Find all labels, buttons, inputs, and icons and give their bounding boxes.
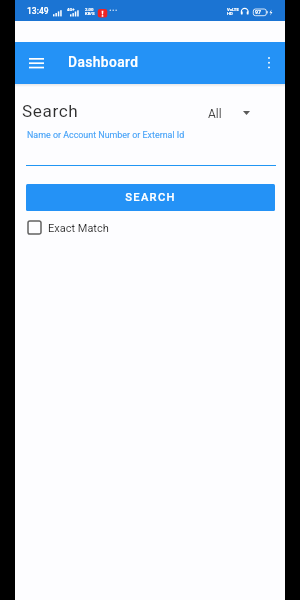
staticText: Exact Match [48,222,109,235]
staticText: 2.00 [85,7,94,12]
staticText: 97 [255,9,261,15]
staticText: Dashboard [68,54,139,70]
button[interactable]: SEARCH [26,184,275,211]
staticText: 13:49 [27,6,49,16]
staticText: HD [227,11,233,16]
staticText: VoLTE [227,7,239,12]
staticText: Search [22,101,79,121]
button[interactable]: Open navigation drawer [21,42,51,84]
button[interactable]: More options [255,42,283,84]
staticText: All [208,107,222,121]
button[interactable]: Exact Match [24,217,126,238]
staticText: 4G+ [67,7,75,12]
button[interactable]: All [205,100,271,126]
staticText: KB/S [85,11,95,16]
staticText: SEARCH [125,191,176,204]
staticText: Name or Account Number or External Id [27,130,185,140]
